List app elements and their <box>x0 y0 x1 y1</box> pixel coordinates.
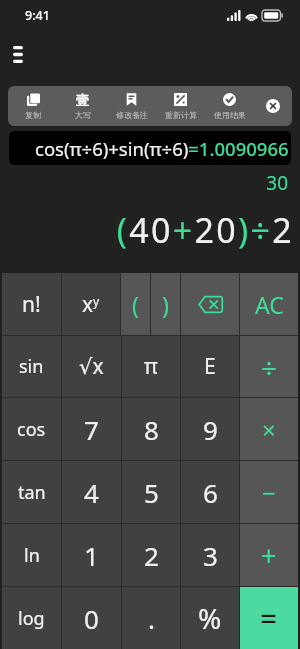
button[interactable]: √x <box>62 336 121 397</box>
staticText: 修改备注 <box>116 110 148 120</box>
button[interactable]: 8 <box>122 398 180 460</box>
button[interactable]: 3 <box>181 524 239 586</box>
staticText: 壹 <box>76 92 89 107</box>
button[interactable]: ln <box>2 524 61 586</box>
staticText: 2 <box>144 538 159 573</box>
staticText: 1 <box>84 538 99 573</box>
button[interactable]: Close <box>254 86 292 126</box>
staticText: E <box>204 352 216 381</box>
button[interactable]: × <box>240 398 298 460</box>
staticText: 使用结果 <box>214 110 246 120</box>
staticText: cos <box>17 417 46 442</box>
button[interactable]: 6 <box>181 461 239 523</box>
button[interactable]: 5 <box>122 461 180 523</box>
other: Backspace <box>197 295 224 314</box>
staticText: 9 <box>203 412 218 447</box>
staticText: 8 <box>144 412 159 447</box>
staticText: ) <box>162 289 169 320</box>
staticText: 复制 <box>25 110 41 120</box>
staticText: 6 <box>203 475 218 510</box>
staticText: 4 <box>84 475 99 510</box>
staticText: sin <box>19 354 44 379</box>
button[interactable]: AC <box>240 273 298 335</box>
staticText: xy <box>82 290 100 319</box>
staticText: + <box>261 537 277 574</box>
staticText: log <box>18 606 45 631</box>
staticText: ln <box>24 543 40 568</box>
button[interactable]: ( <box>121 273 150 335</box>
button[interactable]: Backspace <box>181 273 239 335</box>
button[interactable]: sin <box>2 336 61 397</box>
staticText: AC <box>255 289 284 320</box>
button[interactable]: % <box>181 587 239 649</box>
button[interactable]: 2 <box>122 524 180 586</box>
button[interactable]: ) <box>151 273 180 335</box>
staticText: √x <box>79 352 104 381</box>
staticText: − <box>262 476 276 509</box>
button[interactable]: = <box>240 587 298 649</box>
staticText: 5 <box>144 475 159 510</box>
staticText: ÷ <box>261 348 278 386</box>
staticText: 30 <box>0 170 288 196</box>
staticText: π <box>144 352 158 381</box>
button[interactable]: cos <box>2 398 61 460</box>
staticText: 9:41 <box>25 7 50 24</box>
button[interactable]: 使用结果 <box>205 86 254 126</box>
staticText: % <box>198 599 222 637</box>
staticText: cos(π÷6)+sin(π÷6)=1.0090966 <box>35 136 289 161</box>
staticText: × <box>262 413 276 446</box>
button[interactable]: n! <box>2 273 61 335</box>
button[interactable]: − <box>240 461 298 523</box>
button[interactable]: 修改备注 <box>107 86 156 126</box>
button[interactable]: 4 <box>62 461 121 523</box>
staticText: 重新计算 <box>165 110 197 120</box>
button[interactable]: π <box>122 336 180 397</box>
staticText: = <box>260 598 278 639</box>
button[interactable]: 重新计算 <box>156 86 205 126</box>
button[interactable]: + <box>240 524 298 586</box>
button[interactable]: 1 <box>62 524 121 586</box>
staticText: tan <box>18 480 46 505</box>
staticText: . <box>148 601 155 636</box>
button[interactable]: 0 <box>62 587 121 649</box>
button[interactable]: . <box>122 587 180 649</box>
button[interactable]: log <box>2 587 61 649</box>
button[interactable]: xy <box>62 273 120 335</box>
staticText: (40+20)÷2 <box>0 207 294 253</box>
button[interactable]: ÷ <box>240 336 298 397</box>
staticText: 0 <box>84 601 99 636</box>
staticText: 7 <box>84 412 99 447</box>
button[interactable]: E <box>181 336 239 397</box>
staticText: 大写 <box>75 110 91 120</box>
button[interactable]: 9 <box>181 398 239 460</box>
staticText: ( <box>132 289 139 320</box>
button[interactable]: tan <box>2 461 61 523</box>
button[interactable]: 7 <box>62 398 121 460</box>
button[interactable]: 复制 <box>8 86 58 126</box>
staticText: n! <box>22 290 41 319</box>
staticText: 3 <box>203 538 218 573</box>
button[interactable]: 壹 <box>58 86 107 126</box>
button[interactable]: Menu <box>2 38 34 70</box>
button[interactable]: cos(π÷6)+sin(π÷6)=1.0090966 <box>9 131 291 165</box>
